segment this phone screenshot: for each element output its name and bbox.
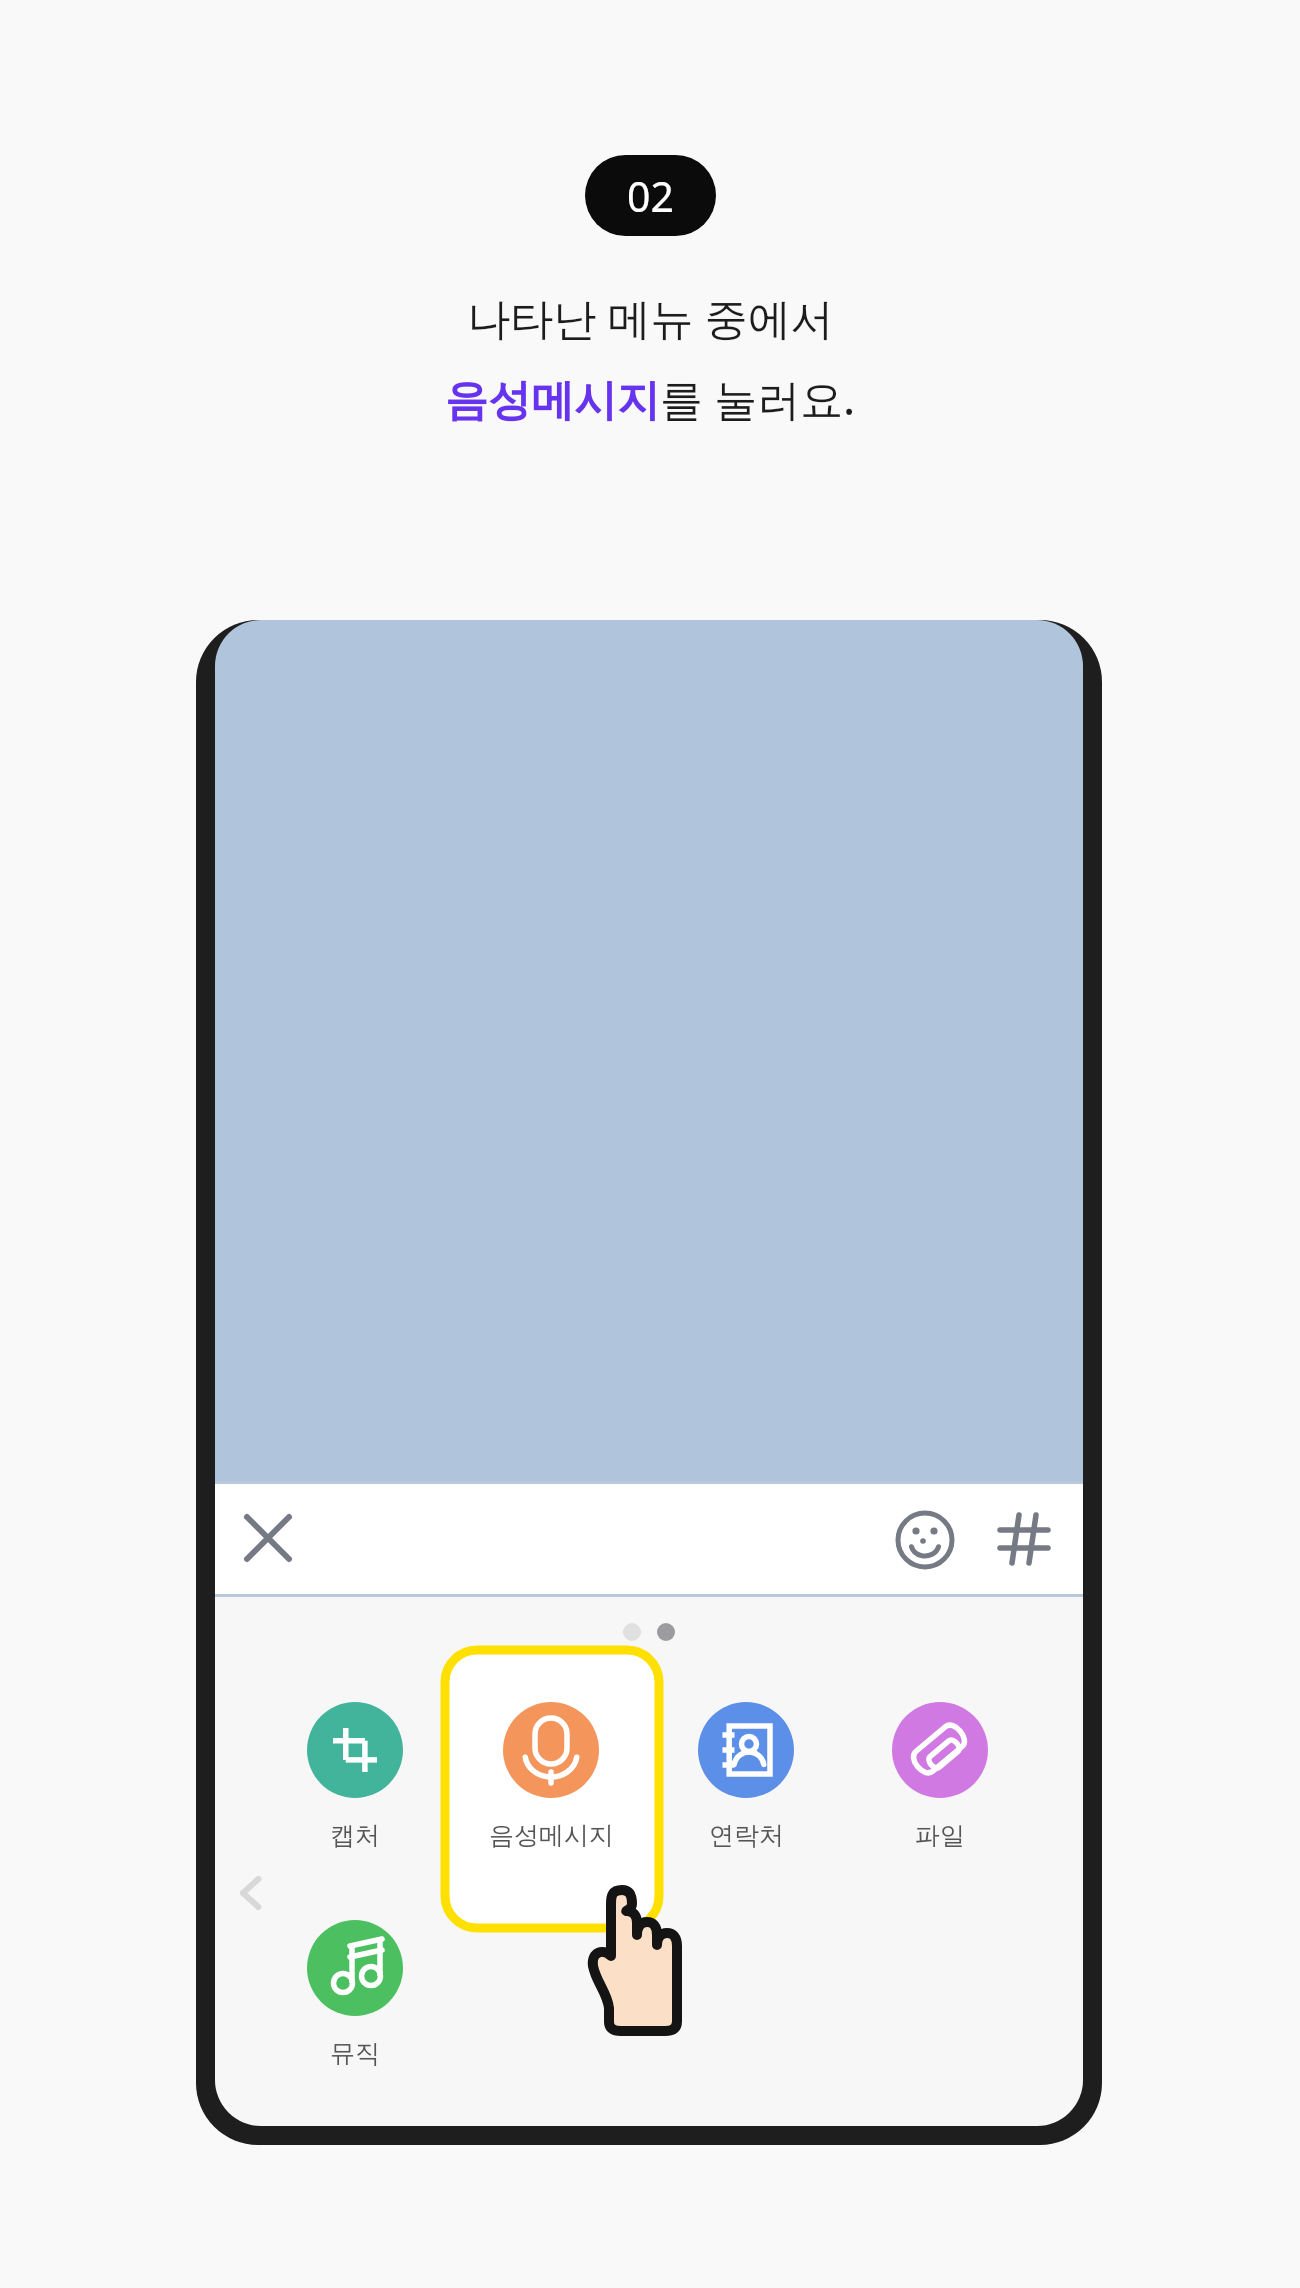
button[interactable]: 파일: [850, 1698, 1030, 1851]
button[interactable]: 음성메시지: [461, 1698, 641, 1851]
button[interactable]: 이전: [222, 1865, 278, 1921]
staticText: 나타난 메뉴 중에서: [467, 288, 834, 347]
staticText: 02: [627, 168, 674, 224]
button[interactable]: 02: [585, 155, 716, 236]
staticText: 음성메시지를 눌러요.: [445, 369, 855, 428]
staticText: 연락처: [709, 1820, 784, 1851]
button[interactable]: 닫기: [240, 1510, 298, 1568]
button[interactable]: 뮤직: [265, 1916, 445, 2069]
button[interactable]: 해시태그: [996, 1512, 1053, 1569]
button[interactable]: 연락처: [656, 1698, 836, 1851]
staticText: 파일: [915, 1820, 965, 1851]
button[interactable]: 캡처: [265, 1698, 445, 1851]
staticText: 뮤직: [330, 2038, 380, 2069]
staticText: 음성메시지: [489, 1820, 614, 1851]
staticText: 캡처: [330, 1820, 380, 1851]
button[interactable]: 이모티콘: [897, 1512, 954, 1569]
